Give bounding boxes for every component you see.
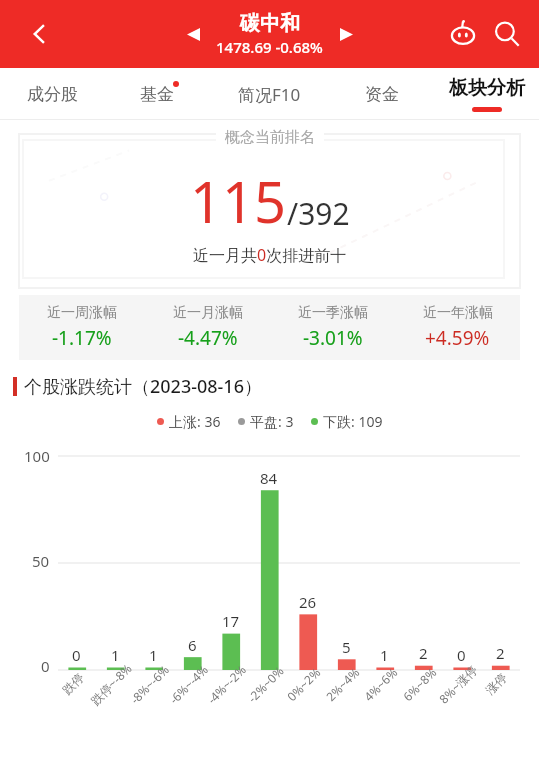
staticText: 近一月共0次排进前十 (193, 244, 347, 266)
staticText: 成分股 (27, 84, 78, 105)
staticText: 平盘: 3 (250, 412, 294, 431)
staticText: -3.01% (303, 325, 363, 351)
staticText: -2%~0% (244, 662, 287, 705)
button[interactable]: AI assistant (441, 12, 485, 56)
staticText: 简况F10 (238, 83, 301, 106)
staticText: 6 (188, 635, 197, 655)
button[interactable]: Next (329, 17, 363, 51)
staticText: 115 (190, 163, 287, 239)
button[interactable]: 板块分析 (434, 68, 539, 120)
staticText: 涨停 (482, 670, 510, 697)
button[interactable]: Search (485, 12, 529, 56)
staticText: 0 (72, 645, 81, 665)
staticText: 1 (111, 645, 120, 665)
staticText: -1.17% (52, 325, 112, 351)
staticText: 2 (419, 643, 428, 663)
staticText: 2%~4% (322, 664, 363, 704)
staticText: 近一月涨幅 (173, 304, 243, 322)
button[interactable]: 简况F10 (209, 68, 329, 120)
staticText: 近一季涨幅 (298, 304, 368, 322)
button[interactable]: Back (20, 14, 60, 54)
staticText: 板块分析 (449, 76, 525, 100)
staticText: 1 (149, 645, 158, 665)
staticText: 1478.69 -0.68% (216, 37, 323, 57)
button[interactable]: 近一周涨幅 (19, 304, 145, 351)
staticText: 5 (342, 637, 351, 657)
button[interactable]: 近一季涨幅 (270, 304, 395, 351)
staticText: 50 (32, 551, 50, 571)
staticText: -8%~-6% (126, 661, 172, 707)
staticText: 2 (496, 643, 505, 663)
staticText: 0 (41, 656, 50, 676)
staticText: 1 (380, 645, 389, 665)
button[interactable]: 资金 (329, 68, 434, 120)
staticText: 26 (299, 592, 317, 612)
staticText: +4.59% (425, 325, 490, 351)
staticText: /392 (287, 193, 350, 234)
staticText: 上涨: 36 (169, 412, 221, 431)
staticText: -6%~-4% (165, 661, 211, 707)
staticText: 100 (24, 446, 50, 466)
button[interactable]: 近一月涨幅 (145, 304, 270, 351)
staticText: 0%~2% (283, 664, 324, 704)
staticText: -4.47% (178, 325, 238, 351)
staticText: 基金 (140, 84, 174, 105)
staticText: 6%~8% (399, 664, 440, 704)
staticText: 4%~6% (360, 664, 401, 704)
staticText: 8%~涨停 (435, 661, 481, 707)
staticText: 个股涨跌统计（2023-08-16） (24, 374, 262, 399)
staticText: 下跌: 109 (323, 412, 383, 431)
staticText: 跌停 (59, 670, 87, 697)
staticText: 近一年涨幅 (423, 304, 493, 322)
button[interactable]: Previous (176, 17, 210, 51)
staticText: 概念当前排名 (225, 128, 315, 147)
staticText: -4%~-2% (203, 661, 249, 707)
staticText: 近一周涨幅 (47, 304, 117, 322)
staticText: 碳中和 (240, 11, 300, 36)
staticText: 17 (222, 611, 240, 631)
button[interactable]: 基金 (104, 68, 209, 120)
staticText: 0 (457, 645, 466, 665)
button[interactable]: 成分股 (0, 68, 104, 120)
staticText: 资金 (365, 84, 399, 105)
button[interactable]: 近一年涨幅 (395, 304, 520, 351)
staticText: 跌停~-8% (87, 660, 135, 708)
staticText: 84 (260, 468, 278, 488)
